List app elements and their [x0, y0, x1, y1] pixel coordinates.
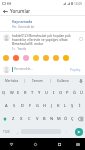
button[interactable]: Kullanıcı [51, 75, 76, 86]
button[interactable]: Home [23, 138, 47, 150]
staticText: Yorum ekle... [14, 67, 69, 71]
staticText: B [43, 116, 46, 121]
staticText: K [57, 103, 60, 108]
button[interactable]: F [26, 99, 34, 112]
button[interactable]: Switch keyboard [71, 138, 85, 150]
button[interactable]: Ü [78, 86, 85, 99]
button[interactable]: Emoji reaction [23, 53, 33, 63]
staticText: , [17, 129, 18, 134]
staticText: ?123 [3, 130, 10, 134]
button[interactable]: , [13, 125, 21, 138]
button[interactable]: B [41, 112, 48, 125]
button[interactable]: W [8, 86, 15, 99]
staticText: Kullanıcı [57, 79, 70, 83]
staticText: O [59, 90, 63, 95]
staticText: halide0123 Bimahsulat çok hoşdan pük [12, 34, 71, 38]
staticText: Tamam [32, 79, 43, 83]
button[interactable]: A [2, 99, 10, 112]
button[interactable]: Like [77, 35, 84, 42]
staticText: F [29, 103, 32, 108]
button[interactable]: Emoji reaction [43, 53, 53, 63]
staticText: Ü [80, 90, 83, 95]
button[interactable]: Merhaba [0, 75, 24, 86]
staticText: P [66, 90, 69, 95]
button[interactable]: U [43, 86, 50, 99]
staticText: V [36, 116, 39, 121]
button[interactable]: Emoji reaction [53, 53, 63, 63]
staticText: İ [79, 103, 81, 108]
button[interactable]: K [55, 99, 62, 112]
button[interactable]: Back [0, 138, 23, 150]
staticText: D [21, 103, 24, 108]
staticText: J [51, 103, 53, 108]
button[interactable]: Emoji reaction [3, 53, 13, 63]
staticText: Ç [71, 116, 74, 121]
button[interactable]: M [55, 112, 62, 125]
staticText: I [53, 90, 55, 95]
staticText: Merhaba [5, 79, 19, 83]
button[interactable]: Ğ [71, 86, 78, 99]
button[interactable]: Q [0, 86, 8, 99]
button[interactable]: Back [0, 7, 10, 15]
staticText: . [66, 129, 67, 134]
button[interactable]: H [41, 99, 48, 112]
button[interactable]: Ö [62, 112, 69, 125]
staticText: Kaynamada [12, 19, 33, 24]
button[interactable]: Emoji reaction [13, 53, 23, 63]
button[interactable]: J [48, 99, 55, 112]
staticText: H [43, 103, 46, 108]
staticText: Ğ [73, 90, 76, 95]
button[interactable]: N [48, 112, 55, 125]
staticText: N [50, 116, 54, 121]
staticText: 1s Yanıtla [12, 47, 27, 51]
button[interactable]: Shift [0, 112, 9, 125]
staticText: M [57, 116, 61, 121]
button[interactable]: Tamam [25, 75, 50, 86]
button[interactable]: P [64, 86, 71, 99]
button[interactable]: Voice input [76, 75, 85, 86]
button[interactable]: Emoji reaction [63, 53, 73, 63]
staticText: Y [38, 90, 41, 95]
staticText: Z [12, 116, 15, 121]
staticText: Paylaş [70, 67, 81, 72]
button[interactable]: O [57, 86, 64, 99]
button[interactable]: Emoji reaction [33, 53, 43, 63]
staticText: G [36, 103, 39, 108]
button[interactable]: D [18, 99, 26, 112]
button[interactable]: Backspace [76, 112, 85, 125]
button[interactable]: V [33, 112, 41, 125]
button[interactable]: I [50, 86, 57, 99]
button[interactable]: Recent apps [47, 138, 71, 150]
button[interactable]: X [17, 112, 25, 125]
button[interactable]: Ç [69, 112, 76, 125]
button[interactable]: L [62, 99, 69, 112]
staticText: L [64, 103, 67, 108]
button[interactable]: C [25, 112, 33, 125]
staticText: C [28, 116, 31, 121]
button[interactable]: S [10, 99, 18, 112]
button[interactable]: Z [9, 112, 17, 125]
staticText: hazırdılar, ellerinde ve yaptığını olfaa… [12, 38, 68, 42]
staticText: Ş [71, 103, 74, 108]
button[interactable]: Ş [69, 99, 76, 112]
button[interactable]: Send [72, 125, 85, 138]
button[interactable]: ?123 [0, 125, 13, 138]
staticText: T [31, 90, 34, 95]
button[interactable]: Paylaş [69, 65, 82, 74]
staticText: 14:05 [74, 2, 83, 6]
button[interactable]: İ [76, 99, 83, 112]
staticText: Yorumlar [10, 8, 31, 14]
staticText: S [13, 103, 16, 108]
button[interactable]: G [34, 99, 41, 112]
staticText: R [24, 90, 27, 95]
staticText: X [20, 116, 23, 121]
button[interactable]: E [15, 86, 22, 99]
button[interactable]: T [29, 86, 36, 99]
staticText: W [10, 90, 14, 95]
staticText: U [45, 90, 48, 95]
button[interactable]: Y [36, 86, 43, 99]
staticText: Bimahsulat06 ondur [12, 42, 44, 46]
button[interactable]: R [22, 86, 29, 99]
